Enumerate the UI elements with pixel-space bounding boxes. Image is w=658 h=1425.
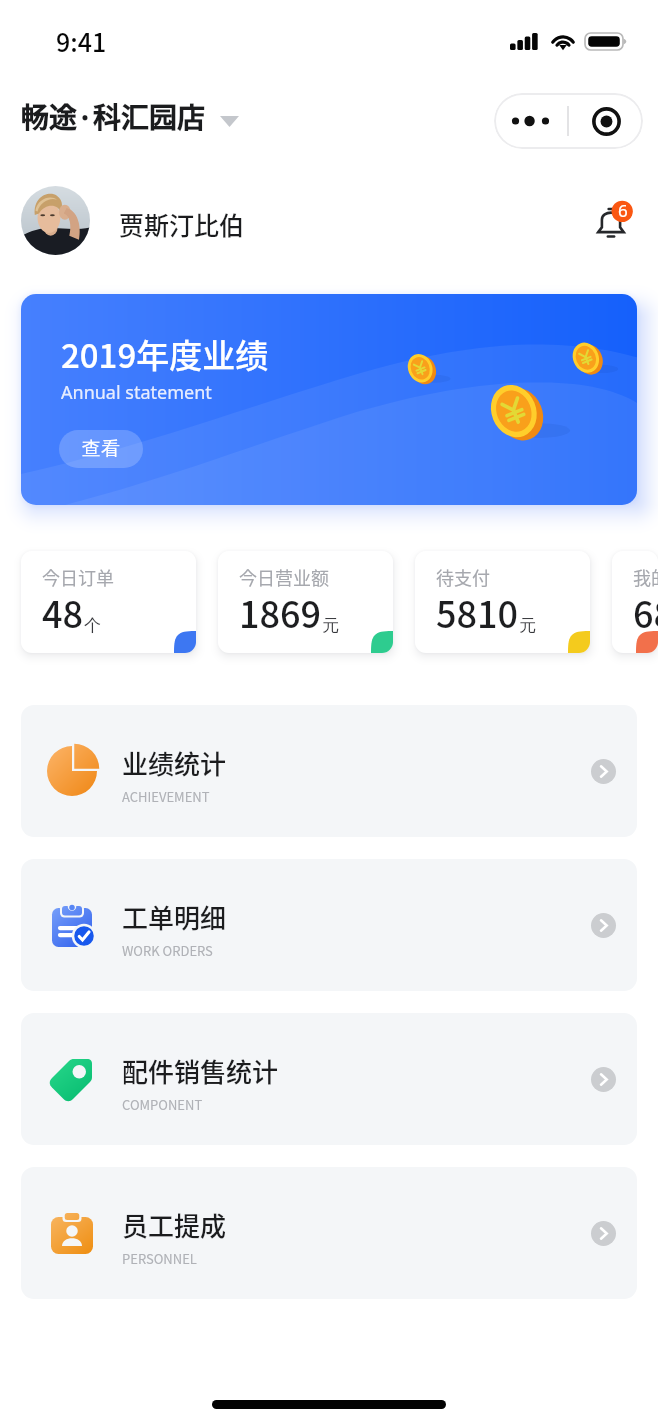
staticText: Annual statement [61,380,212,405]
staticText: 68 [633,586,658,638]
button[interactable]: More options [494,93,567,149]
other: Open [591,759,616,784]
staticText: 待支付 [436,564,490,590]
staticText: 查看 [82,437,120,461]
button[interactable]: 待支付 [415,551,590,653]
other: Open [591,1067,616,1092]
staticText: 员工提成 [122,1206,227,1244]
button[interactable]: 员工提成 [21,1167,637,1299]
staticText: COMPONENT [122,1095,203,1114]
staticText: ACHIEVEMENT [122,787,210,806]
button[interactable]: 2019年度业绩 [21,294,637,505]
staticText: 5810 [436,586,519,638]
staticText: 工单明细 [122,898,227,936]
button[interactable]: 我的 [612,551,658,653]
staticText: 我的 [633,564,658,590]
staticText: PERSONNEL [122,1249,197,1268]
other: Open [591,913,616,938]
button[interactable]: Notifications, 6 unread [585,196,637,248]
button[interactable]: Close mini program [569,93,643,149]
staticText: 个 [84,615,101,636]
staticText: 1869 [239,586,322,638]
staticText: 48 [42,586,84,638]
staticText: 贾斯汀比伯 [119,206,245,242]
staticText: 今日营业额 [239,564,329,590]
staticText: 元 [519,615,536,636]
staticText: 元 [322,615,339,636]
staticText: 9:41 [56,23,107,59]
other: Open [591,1221,616,1246]
staticText: 6 [618,199,628,222]
staticText: WORK ORDERS [122,941,213,960]
button[interactable]: 业绩统计 [21,705,637,837]
button[interactable]: 今日营业额 [218,551,393,653]
staticText: 畅途·科汇园店 [21,96,206,137]
staticText: 配件销售统计 [122,1052,279,1090]
button[interactable]: 今日订单 [21,551,196,653]
button[interactable]: 配件销售统计 [21,1013,637,1145]
button[interactable]: 查看 [59,430,143,468]
button[interactable]: 工单明细 [21,859,637,991]
button[interactable]: Profile avatar [21,186,90,255]
staticText: 业绩统计 [122,744,227,782]
staticText: 2019年度业绩 [61,330,269,378]
staticText: 今日订单 [42,564,114,590]
button[interactable]: 畅途·科汇园店 [21,101,239,142]
